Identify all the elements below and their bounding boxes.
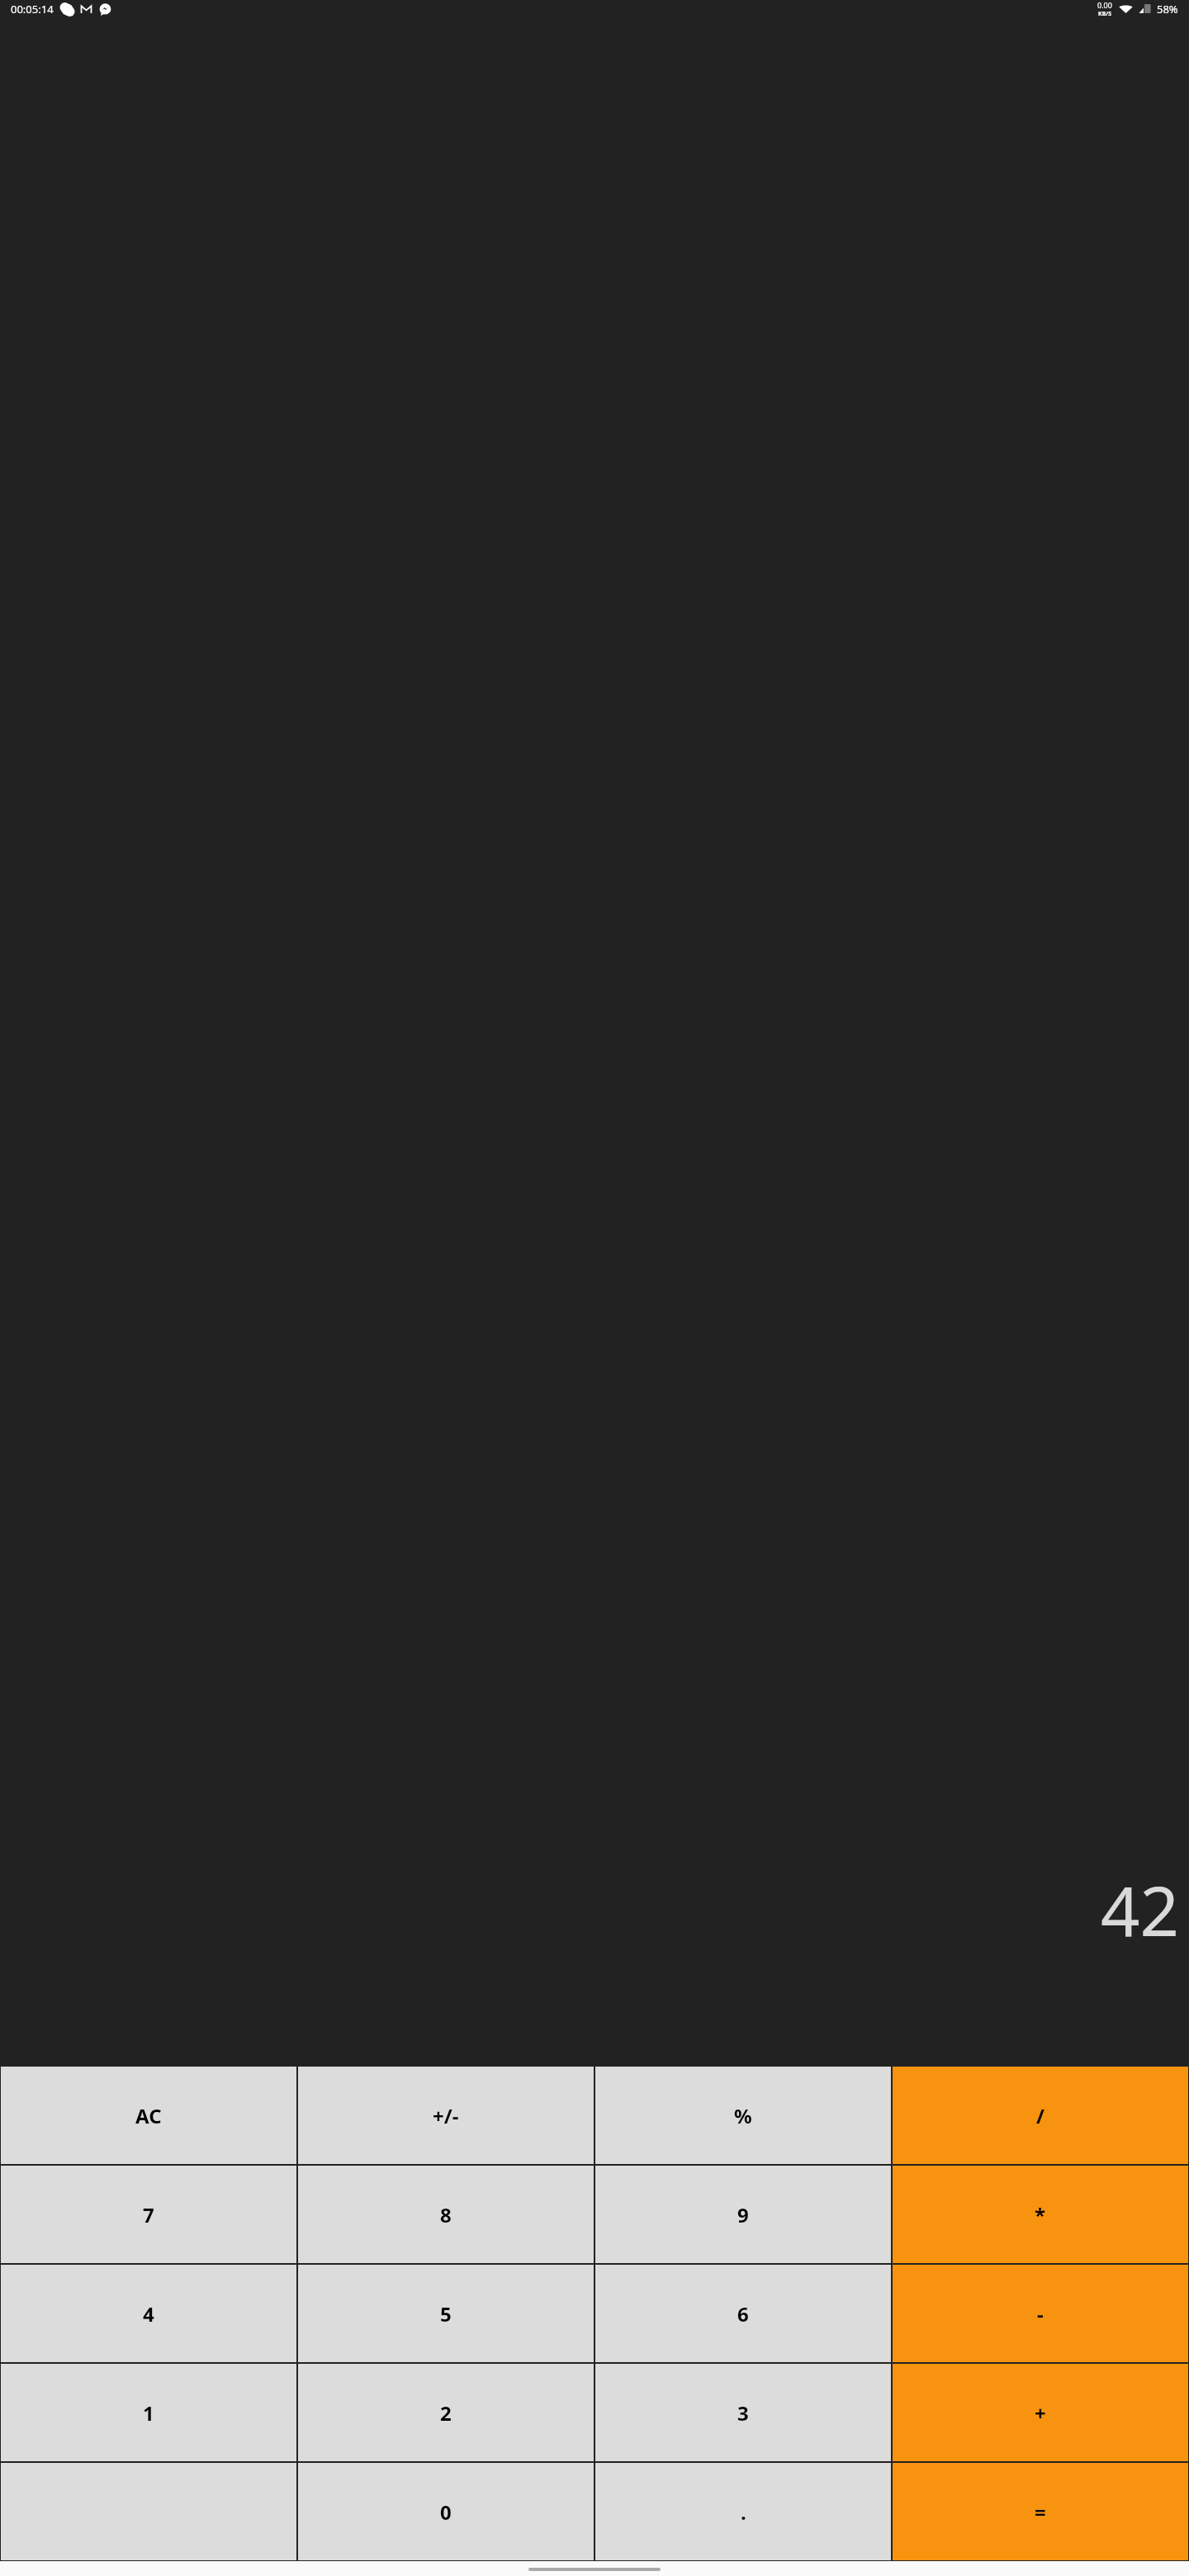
button[interactable]: 6	[595, 2265, 891, 2362]
staticText: 42	[1101, 1863, 1179, 1956]
staticText: 1	[143, 2399, 154, 2427]
button[interactable]: Equals	[893, 2463, 1188, 2560]
staticText: %	[734, 2102, 752, 2129]
staticText: *	[1035, 2201, 1046, 2228]
staticText: =	[1035, 2498, 1046, 2526]
button[interactable]: 3	[595, 2364, 891, 2461]
staticText: 7	[143, 2201, 154, 2228]
button[interactable]: Percent	[595, 2067, 891, 2164]
button[interactable]: Multiply	[893, 2166, 1188, 2263]
button[interactable]: 5	[298, 2265, 594, 2362]
button[interactable]: +/-	[298, 2067, 594, 2164]
other: Signal strength	[1139, 3, 1151, 14]
staticText: 00:05:14	[11, 2, 54, 17]
button[interactable]: 8	[298, 2166, 594, 2263]
staticText: 9	[737, 2201, 749, 2228]
button[interactable]: Decimal point	[595, 2463, 891, 2560]
staticText: 6	[737, 2300, 749, 2327]
other: Skype	[61, 3, 73, 16]
staticText: 0	[440, 2498, 452, 2526]
staticText: AC	[135, 2102, 162, 2129]
staticText: 58%	[1157, 2, 1178, 17]
staticText: 3	[737, 2399, 749, 2427]
button[interactable]: 7	[1, 2166, 296, 2263]
button[interactable]: Add	[893, 2364, 1188, 2461]
staticText: .	[741, 2498, 746, 2526]
button[interactable]: 2	[298, 2364, 594, 2461]
staticText: 4	[143, 2300, 154, 2327]
other: Wi-Fi	[1119, 3, 1133, 14]
staticText: /	[1036, 2102, 1045, 2129]
button[interactable]: Subtract	[893, 2265, 1188, 2362]
staticText: KB/S	[1098, 10, 1112, 17]
staticText: 8	[440, 2201, 452, 2228]
button[interactable]: 9	[595, 2166, 891, 2263]
button[interactable]: 4	[1, 2265, 296, 2362]
other: Messenger	[99, 3, 111, 16]
staticText: 0.00	[1097, 0, 1112, 10]
button[interactable]: 0	[298, 2463, 594, 2560]
button[interactable]: Divide	[893, 2067, 1188, 2164]
staticText: 5	[440, 2300, 452, 2327]
staticText: +/-	[433, 2102, 459, 2129]
other: Gmail	[80, 3, 92, 16]
staticText: 2	[440, 2399, 452, 2427]
staticText: +	[1035, 2399, 1046, 2427]
button[interactable]: 1	[1, 2364, 296, 2461]
staticText: -	[1037, 2300, 1044, 2327]
button[interactable]: AC	[1, 2067, 296, 2164]
